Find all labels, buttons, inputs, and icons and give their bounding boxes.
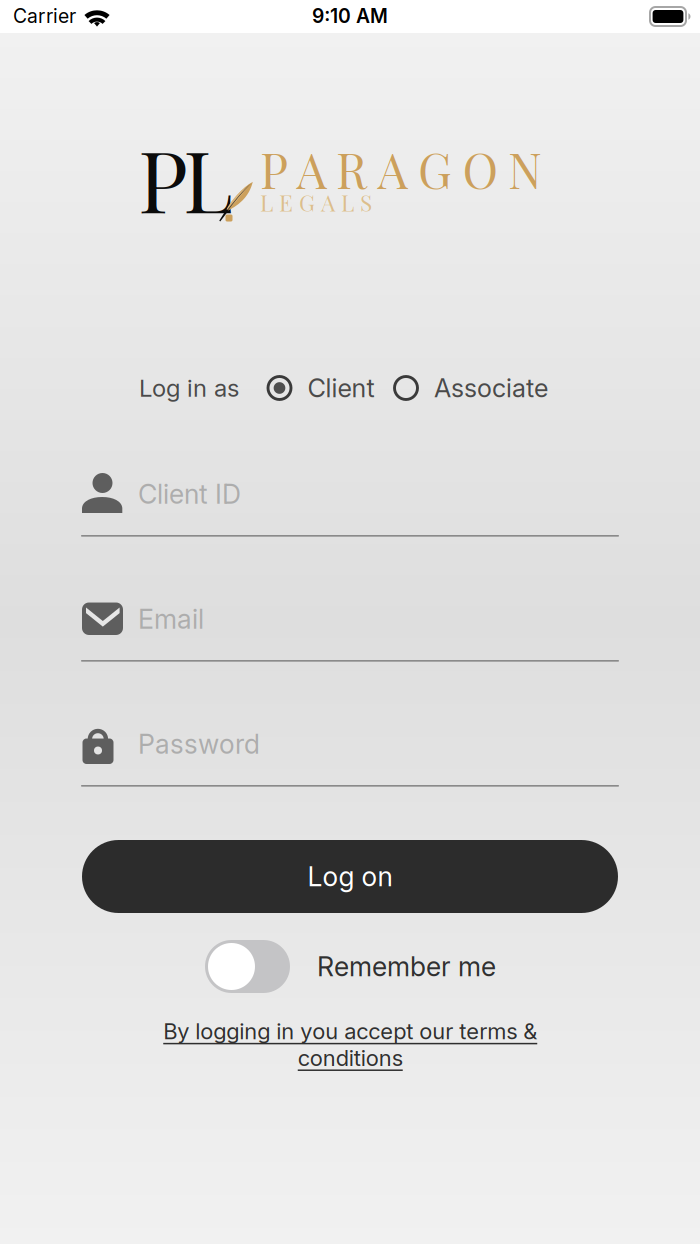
button[interactable]: Log on	[82, 840, 618, 913]
staticText: Password	[138, 728, 260, 760]
staticText: PL	[138, 121, 233, 235]
staticText: Email	[138, 603, 204, 635]
button[interactable]: Associate	[393, 371, 553, 405]
staticText: 9:10 AM	[312, 4, 388, 28]
button[interactable]: Client ID	[81, 456, 619, 544]
button[interactable]: By logging in you accept our terms & con…	[157, 1018, 543, 1082]
button[interactable]: Remember me	[205, 940, 496, 993]
button[interactable]: Client	[266, 371, 378, 405]
staticText: By logging in you accept our terms & con…	[163, 1018, 537, 1071]
staticText: Carrier	[13, 4, 76, 28]
staticText: Associate	[434, 373, 548, 403]
button[interactable]: Password	[81, 706, 619, 794]
staticText: Remember me	[317, 950, 496, 983]
staticText: Client	[307, 373, 374, 403]
staticText: Client ID	[138, 478, 241, 510]
staticText: Log on	[307, 860, 392, 893]
button[interactable]: Email	[81, 581, 619, 669]
staticText: LEGALS	[260, 187, 372, 217]
staticText: Log in as	[139, 373, 239, 402]
staticText: PARAGON	[260, 137, 542, 201]
